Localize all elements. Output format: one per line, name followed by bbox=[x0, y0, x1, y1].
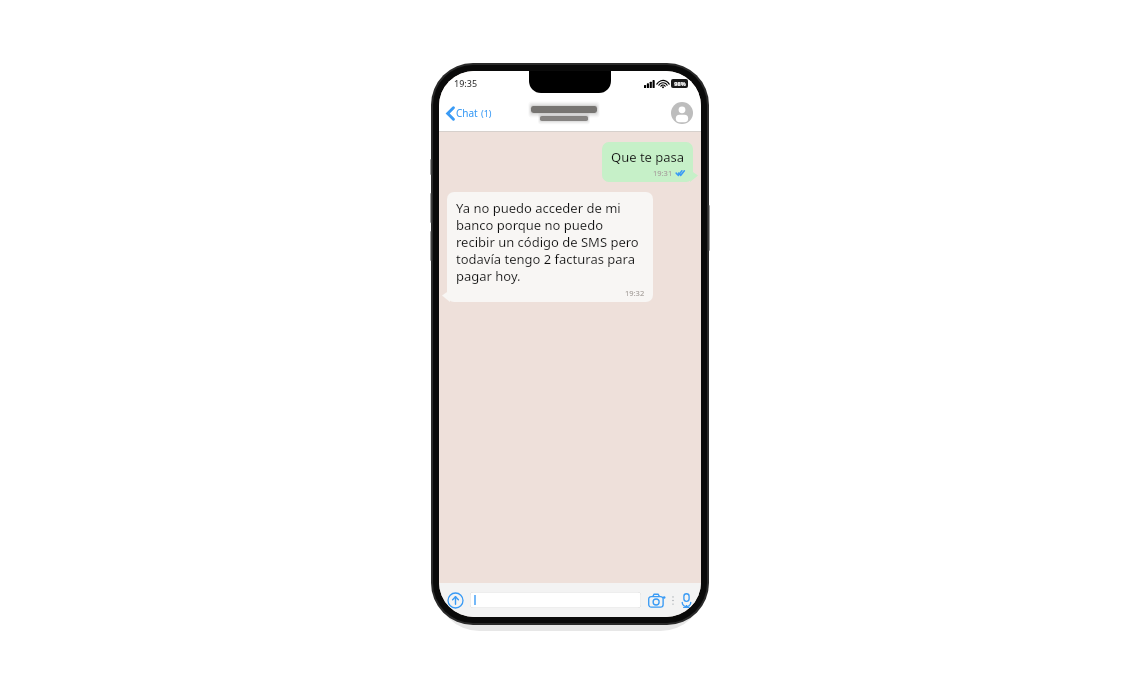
button[interactable]: More options bbox=[670, 593, 676, 608]
button[interactable]: Camera bbox=[648, 593, 666, 608]
staticText: Chat bbox=[456, 106, 478, 120]
staticText: 19:31 bbox=[653, 168, 673, 178]
staticText: 98% bbox=[674, 80, 686, 87]
button[interactable]: Contact profile bbox=[671, 102, 693, 124]
button[interactable]: Send options bbox=[447, 592, 464, 609]
button[interactable]: Chat bbox=[439, 102, 498, 124]
staticText: Ya no puedo acceder de mi banco porque n… bbox=[456, 199, 645, 285]
staticText: 19:32 bbox=[625, 288, 645, 298]
staticText: Que te pasa bbox=[611, 148, 685, 166]
button[interactable]: Que te pasa bbox=[602, 142, 693, 182]
staticText: (1) bbox=[481, 107, 492, 119]
button[interactable]: Voice message bbox=[680, 592, 693, 609]
button[interactable]: Ya no puedo acceder de mi banco porque n… bbox=[447, 192, 653, 302]
button[interactable] bbox=[470, 592, 641, 608]
staticText: 19:35 bbox=[454, 77, 478, 89]
